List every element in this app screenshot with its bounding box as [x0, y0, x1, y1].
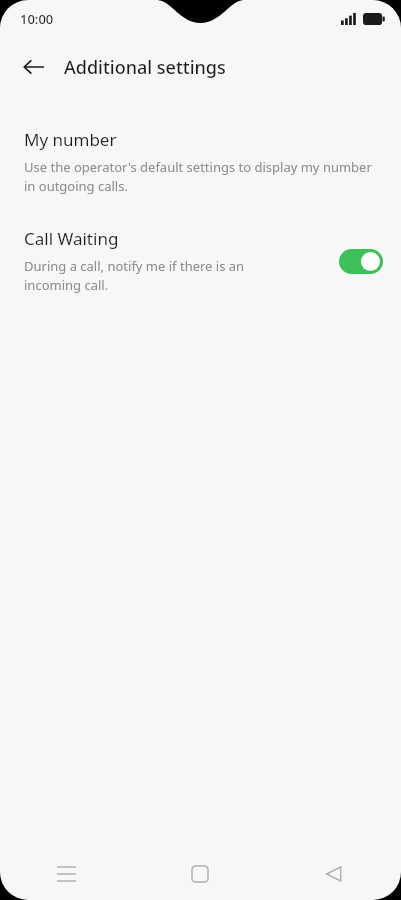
- staticText: Call Waiting: [24, 227, 119, 250]
- button[interactable]: Back: [267, 848, 401, 900]
- button[interactable]: Home: [133, 848, 267, 900]
- staticText: Use the operator's default settings to d…: [24, 158, 383, 195]
- staticText: Additional settings: [64, 55, 226, 80]
- staticText: 10:00: [20, 10, 54, 28]
- button[interactable]: Call Waiting toggle, on: [339, 249, 383, 274]
- button[interactable]: Back: [14, 47, 54, 87]
- button[interactable]: Recent apps: [0, 848, 133, 900]
- button[interactable]: Call Waiting: [0, 225, 401, 296]
- button[interactable]: My number: [0, 126, 401, 197]
- staticText: During a call, notify me if there is an …: [24, 257, 294, 294]
- staticText: My number: [24, 128, 117, 151]
